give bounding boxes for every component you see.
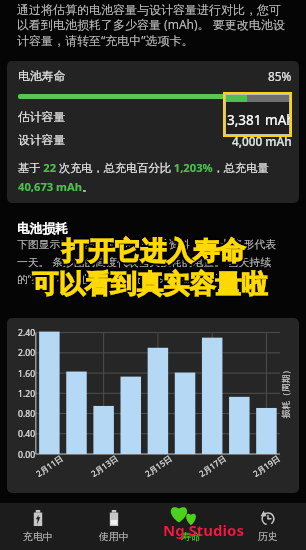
staticText: 2月19日 [251, 452, 282, 479]
staticText: 打开它进入寿命 [60, 235, 244, 268]
button[interactable]: 充电中 [0, 503, 76, 550]
staticText: 可以看到真实容量啦 [31, 268, 267, 301]
staticText: 可以看到真实容量啦 [33, 268, 269, 301]
staticText: 可以看到真实容量啦 [30, 267, 266, 300]
staticText: 2.40 [18, 327, 36, 339]
button[interactable]: 使用中 [76, 503, 152, 550]
staticText: 打开它进入寿命 [62, 234, 246, 267]
other: 使用中 [107, 510, 121, 526]
staticText: 可以看到真实容量啦 [32, 270, 268, 303]
staticText: 3,381 mAh [227, 111, 290, 129]
staticText: 打开它进入寿命 [62, 237, 246, 270]
staticText: 0.80 [18, 408, 36, 420]
staticText: 损耗（周期） [280, 365, 291, 418]
button[interactable]: 电池寿命 [7, 61, 299, 203]
staticText: 可以看到真实容量啦 [32, 269, 268, 302]
staticText: 打开它进入寿命 [62, 233, 246, 266]
staticText: 电池损耗 [17, 221, 68, 237]
staticText: 历史 [258, 530, 278, 543]
other: 充电中 [31, 510, 45, 526]
staticText: 打开它进入寿命 [61, 236, 245, 269]
staticText: 打开它进入寿命 [60, 236, 244, 269]
staticText: 可以看到真实容量啦 [32, 266, 268, 299]
staticText: 打开它进入寿命 [62, 235, 246, 268]
staticText: 打开它进入寿命 [64, 236, 248, 269]
staticText: 打开它进入寿命 [63, 234, 247, 267]
staticText: 电池寿命 [18, 69, 66, 84]
staticText: 打开它进入寿命 [61, 233, 245, 266]
staticText: 0.00 [18, 449, 36, 461]
staticText: 打开它进入寿命 [60, 234, 244, 267]
staticText: Ng Studios [163, 520, 244, 540]
staticText: 85% [268, 68, 292, 84]
staticText: 可以看到真实容量啦 [30, 268, 266, 301]
staticText: 使用中 [99, 530, 129, 543]
staticText: 2月11日 [34, 452, 65, 479]
staticText: 3,381 mAh [232, 110, 292, 126]
staticText: 估计容量 [18, 110, 66, 125]
staticText: 充电中 [23, 530, 53, 543]
staticText: 设计容量 [18, 133, 66, 148]
staticText: 基于 22 次充电，总充电百分比 1,203%，总充电量 40,673 mAh。 [18, 160, 292, 194]
staticText: 打开它进入寿命 [62, 236, 246, 269]
staticText: 0.40 [18, 428, 36, 440]
button[interactable]: 寿命 [152, 503, 229, 550]
staticText: 可以看到真实容量啦 [33, 269, 269, 302]
staticText: 可以看到真实容量啦 [31, 266, 267, 299]
staticText: 2月15日 [143, 452, 174, 479]
other: 历史 [261, 510, 275, 526]
staticText: 通过将估算的电池容量与设计容量进行对比，您可以看到电池损耗了多少容量 (mAh)… [17, 2, 288, 48]
staticText: 打开它进入寿命 [61, 237, 245, 270]
staticText: 2.00 [18, 347, 36, 359]
staticText: 可以看到真实容量啦 [31, 267, 267, 300]
staticText: 打开它进入寿命 [64, 235, 248, 268]
staticText: 打开它进入寿命 [63, 233, 247, 266]
staticText: 打开它进入寿命 [64, 234, 248, 267]
staticText: 打开它进入寿命 [61, 234, 245, 267]
staticText: 4,000 mAh [227, 133, 290, 134]
staticText: 1.20 [18, 388, 36, 400]
staticText: 2月17日 [197, 452, 228, 479]
staticText: 可以看到真实容量啦 [33, 267, 269, 300]
staticText: 可以看到真实容量啦 [32, 268, 268, 301]
button[interactable]: 历史 [229, 503, 306, 550]
staticText: 可以看到真实容量啦 [34, 268, 270, 301]
staticText: 可以看到真实容量啦 [31, 269, 267, 302]
staticText: 打开它进入寿命 [63, 235, 247, 268]
staticText: 可以看到真实容量啦 [34, 269, 270, 302]
staticText: 可以看到真实容量啦 [31, 270, 267, 303]
staticText: 可以看到真实容量啦 [32, 267, 268, 300]
other: 寿命 [184, 510, 198, 526]
staticText: 寿命 [181, 530, 201, 543]
staticText: 下图显示了过去两周的电池损耗资料，每个长条形代表一天。 条形图的高度代表当天损耗… [17, 238, 285, 286]
staticText: 可以看到真实容量啦 [33, 270, 269, 303]
staticText: 2月13日 [89, 452, 120, 479]
staticText: 打开它进入寿命 [63, 237, 247, 270]
staticText: 可以看到真实容量啦 [30, 269, 266, 302]
staticText: 可以看到真实容量啦 [33, 266, 269, 299]
staticText: 4,000 mAh [232, 133, 292, 149]
staticText: 可以看到真实容量啦 [34, 267, 270, 300]
staticText: 打开它进入寿命 [61, 235, 245, 268]
staticText: 打开它进入寿命 [63, 236, 247, 269]
staticText: 1.60 [18, 368, 36, 380]
